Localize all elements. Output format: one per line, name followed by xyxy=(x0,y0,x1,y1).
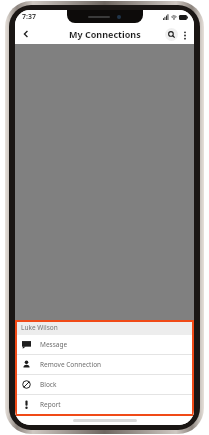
staticText: Message xyxy=(40,340,68,349)
staticText: Report xyxy=(40,400,61,409)
button[interactable]: Search xyxy=(165,28,178,41)
button[interactable]: Block xyxy=(15,375,194,394)
button[interactable]: Message xyxy=(15,335,194,354)
staticText: 7:37 xyxy=(22,12,36,22)
staticText: Block xyxy=(40,380,57,389)
staticText: Luke Wilson xyxy=(21,323,58,332)
button[interactable]: Report xyxy=(15,395,194,414)
button[interactable]: Back xyxy=(18,26,34,42)
button[interactable]: Remove Connection xyxy=(15,355,194,374)
button[interactable]: More options xyxy=(179,29,191,41)
staticText: Remove Connection xyxy=(40,360,102,369)
staticText: My Connections xyxy=(69,28,141,40)
